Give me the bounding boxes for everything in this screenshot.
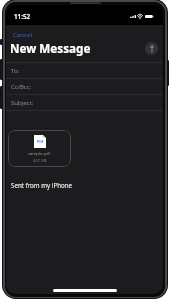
button[interactable]: Cc/Bcc:	[6, 78, 163, 94]
button[interactable]: PDF	[8, 130, 71, 167]
button[interactable]: Cancel	[11, 28, 34, 40]
staticText: PDF	[37, 139, 44, 144]
staticText: Subject:	[11, 99, 34, 107]
button[interactable]: Send	[145, 42, 158, 55]
button[interactable]: Subject:	[6, 94, 163, 110]
staticText: sample.pdf	[28, 151, 51, 157]
staticText: Cancel	[13, 30, 32, 38]
staticText: 11:52	[14, 12, 31, 21]
staticText: To:	[11, 67, 20, 75]
staticText: New Message	[10, 40, 91, 56]
staticText: 467 KB	[33, 158, 47, 164]
staticText: Sent from my iPhone	[11, 181, 73, 189]
staticText: Cc/Bcc:	[11, 83, 32, 91]
button[interactable]: To:	[6, 62, 163, 78]
